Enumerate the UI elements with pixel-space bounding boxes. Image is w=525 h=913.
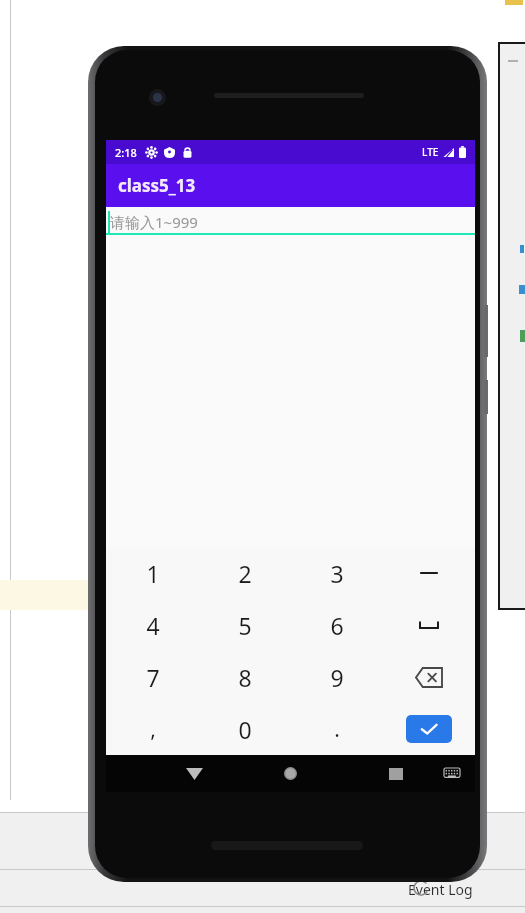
button[interactable]: Back bbox=[174, 755, 214, 792]
button[interactable]: 3 bbox=[291, 547, 383, 599]
button[interactable]: Enter bbox=[383, 703, 475, 755]
button[interactable]: 6 bbox=[291, 599, 383, 651]
button[interactable]: Recents bbox=[376, 755, 416, 792]
button[interactable]: , bbox=[106, 703, 199, 755]
button[interactable]: 0 bbox=[199, 703, 291, 755]
button[interactable]: Event Log bbox=[408, 880, 473, 899]
staticText: , bbox=[150, 715, 156, 744]
staticText: 请输入1~999 bbox=[110, 212, 198, 232]
button[interactable]: Home bbox=[270, 755, 310, 792]
button[interactable]: Switch keyboard bbox=[434, 755, 470, 792]
staticText: 7 bbox=[146, 662, 160, 693]
button[interactable]: 4 bbox=[106, 599, 199, 651]
button[interactable]: Minus bbox=[383, 547, 475, 599]
button[interactable]: 7 bbox=[106, 651, 199, 703]
button[interactable]: . bbox=[291, 703, 383, 755]
staticText: 2 bbox=[238, 558, 252, 589]
staticText: 2:18 bbox=[115, 145, 137, 160]
button[interactable]: 5 bbox=[199, 599, 291, 651]
staticText: 6 bbox=[330, 610, 344, 641]
staticText: 8 bbox=[238, 662, 252, 693]
staticText: 1 bbox=[146, 558, 160, 589]
button[interactable]: 1 bbox=[106, 547, 199, 599]
staticText: LTE bbox=[422, 145, 439, 159]
button[interactable]: 请输入1~999 bbox=[106, 207, 475, 241]
button[interactable]: Space bbox=[383, 599, 475, 651]
staticText: 3 bbox=[330, 558, 344, 589]
button[interactable]: 9 bbox=[291, 651, 383, 703]
staticText: 9 bbox=[330, 662, 344, 693]
button[interactable]: Backspace bbox=[383, 651, 475, 703]
staticText: 4 bbox=[146, 610, 160, 641]
staticText: 5 bbox=[238, 610, 252, 641]
button[interactable]: 8 bbox=[199, 651, 291, 703]
staticText: 0 bbox=[238, 714, 252, 745]
staticText: Event Log bbox=[408, 880, 473, 899]
staticText: class5_13 bbox=[118, 174, 196, 197]
button[interactable]: 2 bbox=[199, 547, 291, 599]
staticText: . bbox=[334, 715, 340, 744]
